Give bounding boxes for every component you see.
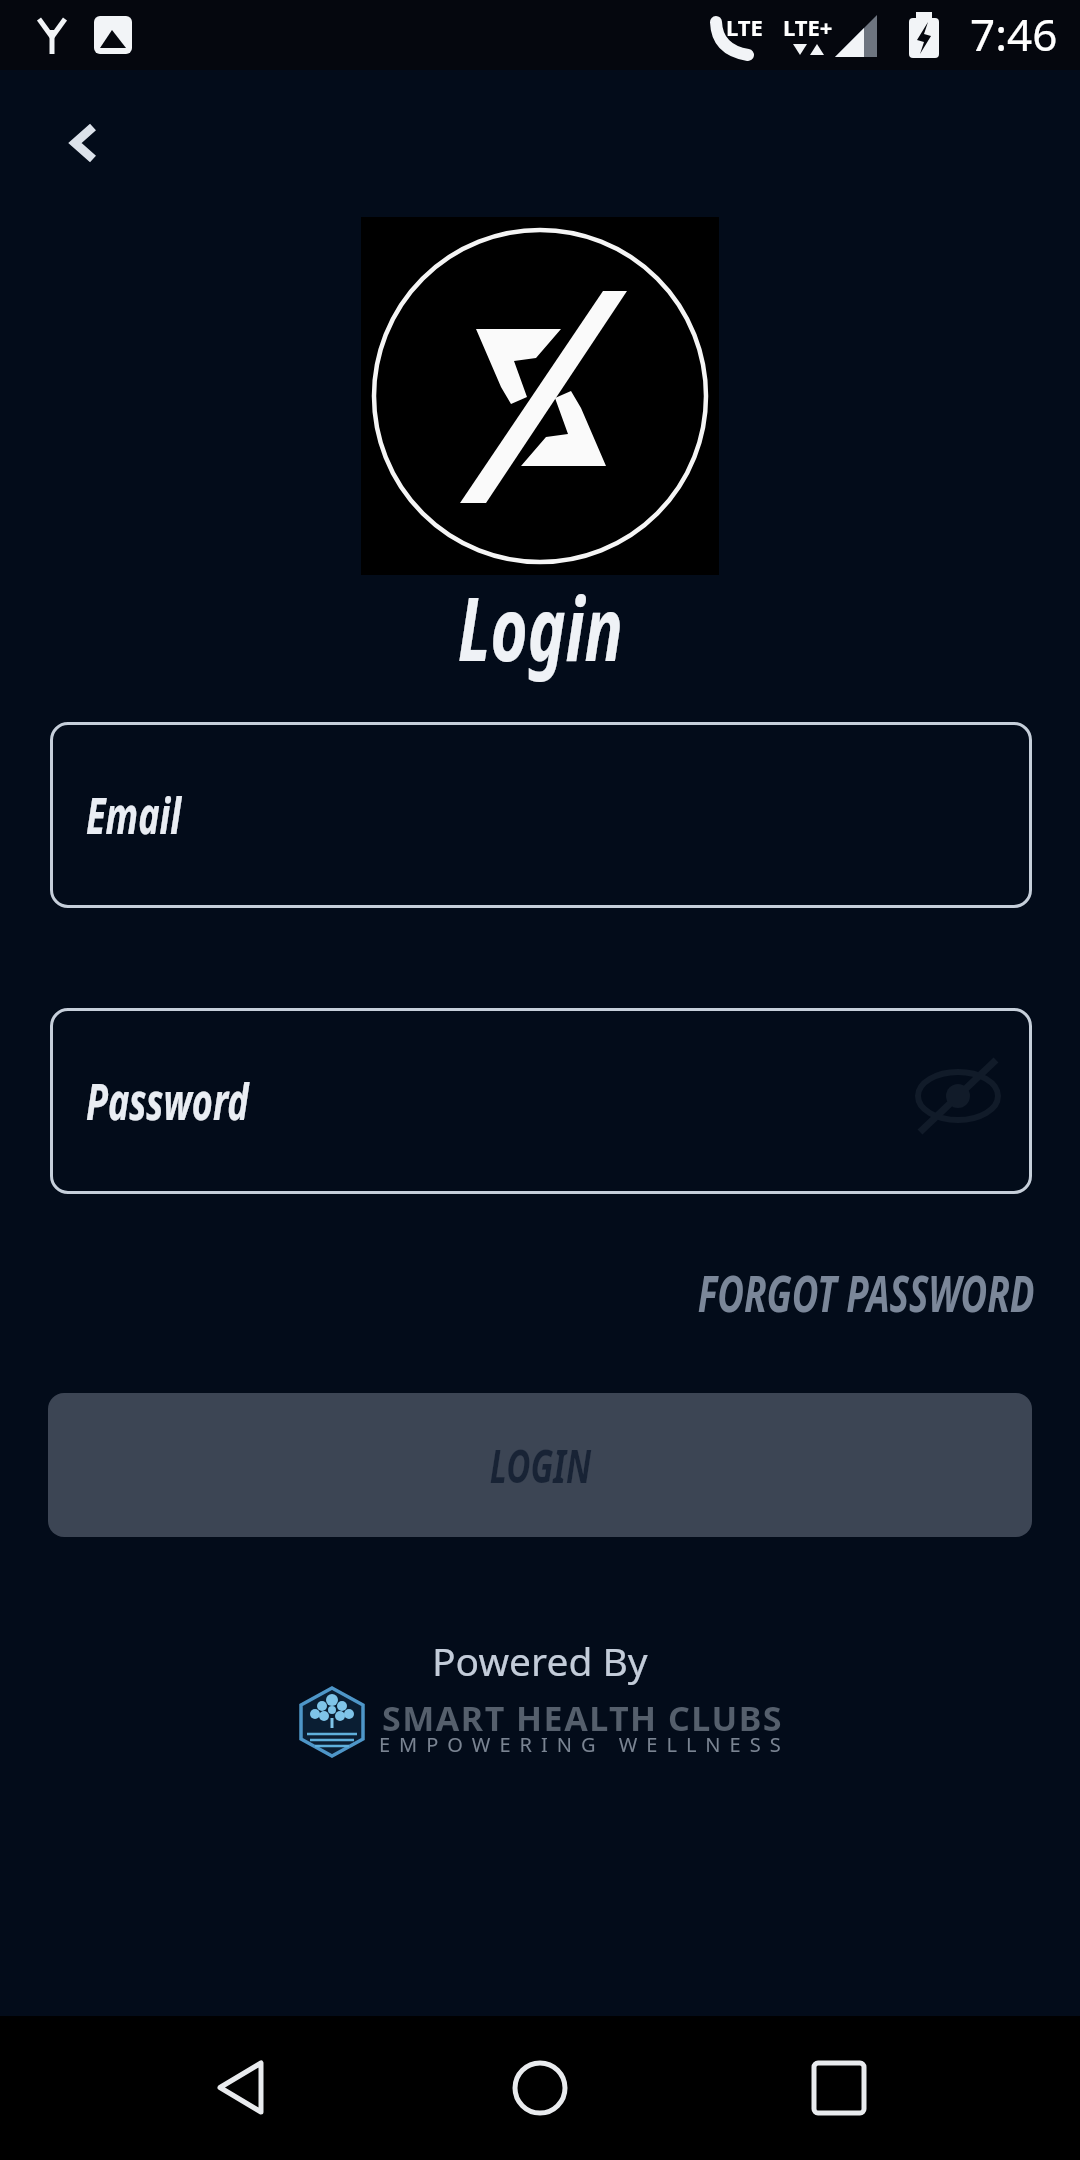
button[interactable]: LOGIN — [48, 1393, 1032, 1537]
staticText: LTE+ — [783, 12, 833, 42]
button[interactable] — [802, 2050, 874, 2122]
staticText: LTE — [726, 12, 763, 42]
button[interactable]: Email — [50, 722, 1032, 908]
button[interactable]: Password — [50, 1008, 1032, 1194]
staticText: Password — [86, 1067, 249, 1135]
staticText: EMPOWERING WELLNESS — [379, 1731, 790, 1758]
button[interactable] — [205, 2050, 277, 2122]
staticText: FORGOT PASSWORD — [698, 1259, 1035, 1325]
staticText: 7:46 — [970, 4, 1058, 64]
button[interactable] — [60, 113, 120, 173]
button[interactable]: FORGOT PASSWORD — [480, 1259, 1035, 1325]
button[interactable] — [504, 2050, 576, 2122]
staticText: Email — [86, 781, 181, 849]
staticText: Powered By — [432, 1634, 648, 1687]
staticText: Login — [458, 568, 623, 686]
staticText: SMART HEALTH CLUBS — [382, 1695, 783, 1741]
staticText: LOGIN — [490, 1434, 591, 1497]
